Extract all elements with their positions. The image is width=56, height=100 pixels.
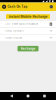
staticText: Instant Mobile Recharge bbox=[8, 15, 47, 18]
button[interactable]: Account bbox=[50, 2, 56, 11]
button[interactable]: Select Operator bbox=[0, 28, 56, 34]
button[interactable]: Back bbox=[6, 92, 16, 99]
button[interactable]: Home bbox=[23, 92, 33, 99]
button[interactable]: Cash On Tap logo bbox=[0, 2, 8, 11]
staticText: Select Amount bbox=[5, 36, 22, 39]
button[interactable]: Recharge bbox=[17, 46, 38, 51]
button[interactable]: Recent apps bbox=[39, 92, 49, 99]
button[interactable]: +91 Enter Mobile Number bbox=[0, 21, 56, 27]
button[interactable]: Select Amount bbox=[0, 35, 56, 41]
staticText: +91 Enter Mobile Number bbox=[5, 23, 38, 26]
staticText: Select Operator bbox=[5, 29, 24, 32]
button[interactable]: Instant Mobile Recharge bbox=[6, 14, 50, 19]
staticText: Cash On Tap bbox=[8, 5, 28, 8]
staticText: Recharge bbox=[20, 47, 35, 50]
